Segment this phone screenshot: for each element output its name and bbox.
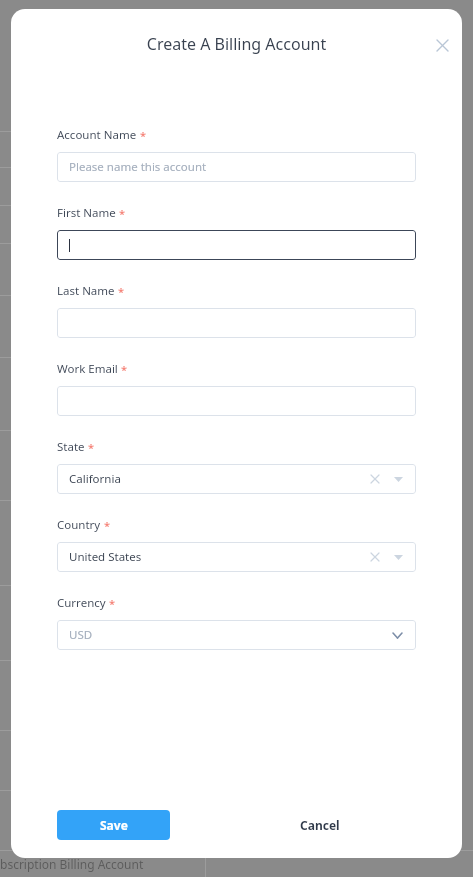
staticText: *: [109, 596, 116, 611]
staticText: Please name this account: [69, 159, 207, 175]
staticText: Work Email: [57, 361, 118, 377]
button[interactable]: Please name this account: [57, 152, 416, 182]
staticText: *: [121, 362, 128, 377]
button[interactable]: Clear selection: [367, 471, 383, 487]
staticText: Save: [100, 817, 128, 833]
staticText: Last Name: [57, 283, 115, 299]
staticText: *: [118, 284, 125, 299]
staticText: Cancel: [300, 817, 340, 833]
button[interactable]: Clear selection: [367, 549, 383, 565]
button[interactable]: [57, 230, 416, 260]
staticText: *: [88, 440, 95, 455]
button[interactable]: United States: [57, 542, 416, 572]
button[interactable]: California: [57, 464, 416, 494]
button[interactable]: Cancel: [290, 810, 350, 840]
staticText: United States: [69, 549, 142, 565]
staticText: Currency: [57, 595, 106, 611]
staticText: First Name: [57, 205, 116, 221]
staticText: Create A Billing Account: [11, 33, 462, 55]
button[interactable]: Save: [57, 810, 170, 840]
button[interactable]: [57, 386, 416, 416]
staticText: Account Name: [57, 127, 137, 143]
button[interactable]: Close: [427, 30, 457, 60]
staticText: California: [69, 471, 121, 487]
button[interactable]: Open dropdown: [390, 471, 406, 487]
staticText: bscription Billing Account: [0, 856, 144, 872]
button[interactable]: [57, 308, 416, 338]
button[interactable]: Open dropdown: [390, 549, 406, 565]
staticText: *: [119, 206, 126, 221]
staticText: State: [57, 439, 85, 455]
staticText: Country: [57, 517, 101, 533]
staticText: USD: [69, 627, 93, 643]
button[interactable]: Open dropdown: [388, 626, 406, 644]
staticText: *: [140, 128, 147, 143]
button[interactable]: USD: [57, 620, 416, 650]
staticText: *: [104, 518, 111, 533]
